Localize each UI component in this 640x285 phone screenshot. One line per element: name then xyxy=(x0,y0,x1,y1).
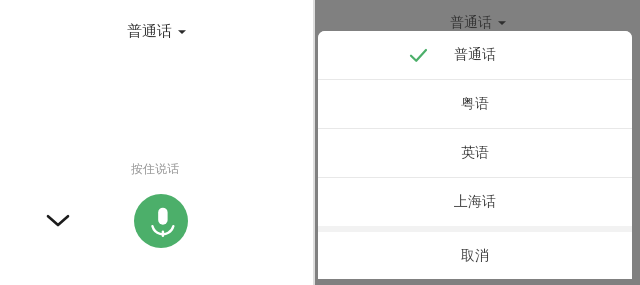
button[interactable]: 上海话 xyxy=(318,178,632,226)
staticText: 英语 xyxy=(461,144,489,162)
button[interactable]: 收起 xyxy=(40,202,76,238)
button[interactable]: 英语 xyxy=(318,129,632,177)
staticText: 按住说话 xyxy=(131,161,179,176)
button[interactable]: 普通话 xyxy=(318,31,632,79)
staticText: 粤语 xyxy=(461,95,489,113)
staticText: 普通话 xyxy=(127,22,172,41)
staticText: 上海话 xyxy=(454,193,496,211)
staticText: 普通话 xyxy=(450,14,492,32)
staticText: 取消 xyxy=(461,247,489,265)
button[interactable]: 普通话 xyxy=(440,12,516,34)
button[interactable]: 普通话 xyxy=(117,18,196,45)
button[interactable]: 按住说话 xyxy=(134,194,188,248)
button[interactable]: 取消 xyxy=(318,232,632,279)
staticText: 普通话 xyxy=(454,46,496,64)
button[interactable]: 粤语 xyxy=(318,80,632,128)
